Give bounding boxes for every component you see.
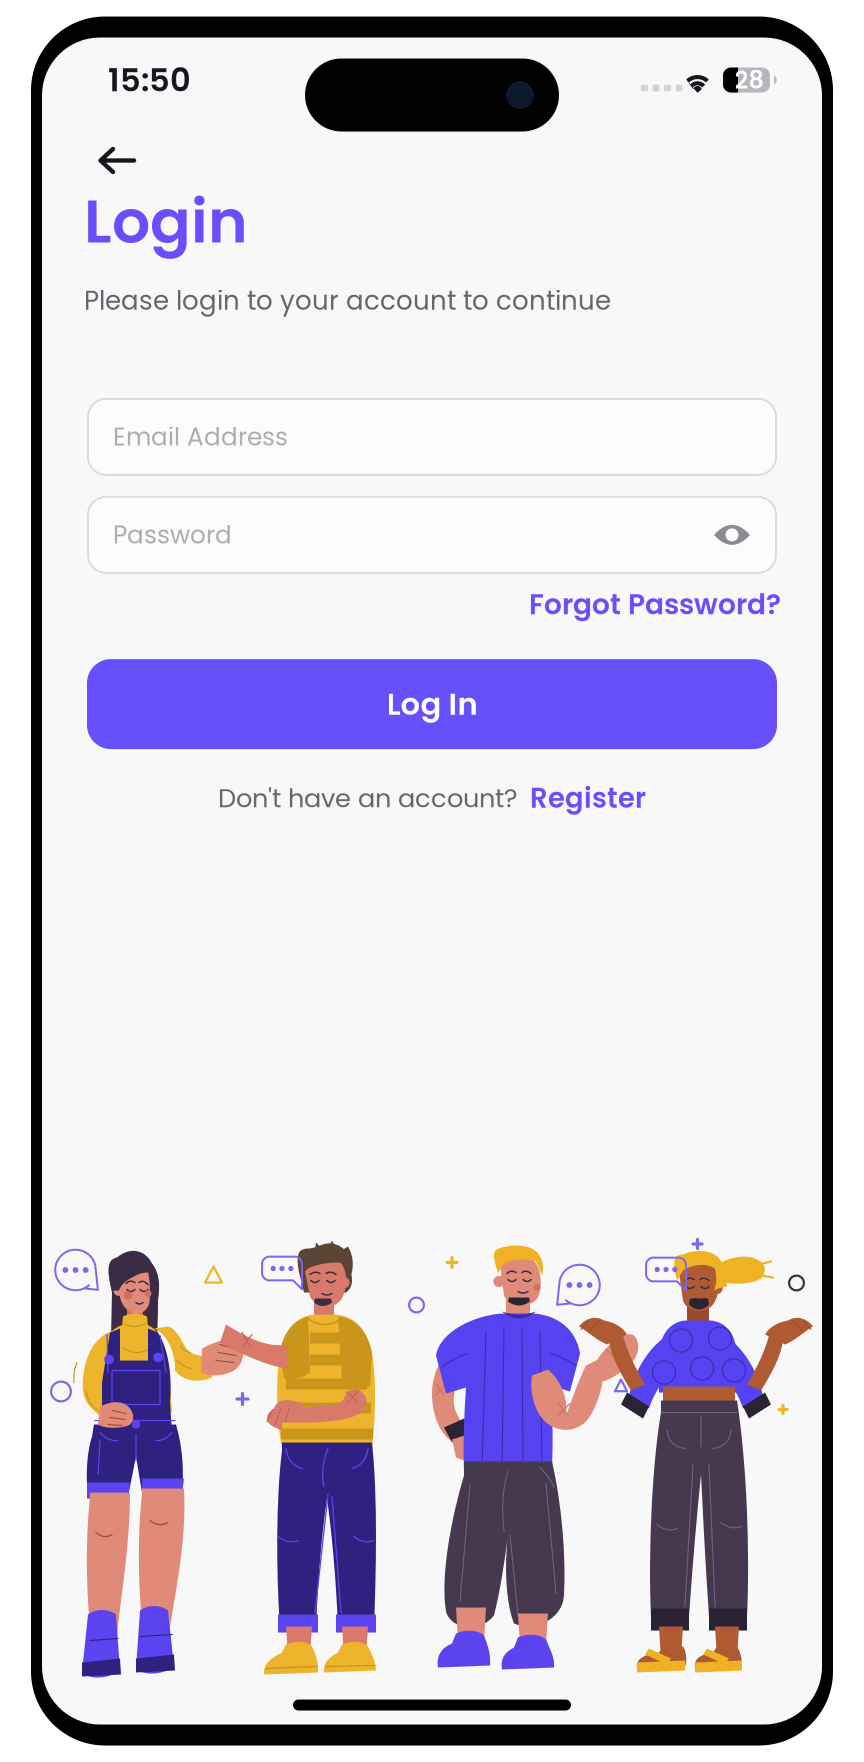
staticText: Email Address bbox=[113, 420, 288, 454]
button[interactable]: Register bbox=[530, 779, 646, 817]
button[interactable]: Email Address bbox=[87, 398, 777, 476]
staticText: Log In bbox=[386, 683, 477, 725]
staticText: 15:50 bbox=[108, 58, 191, 102]
staticText: Don't have an account? bbox=[218, 780, 517, 816]
staticText: Register bbox=[530, 779, 646, 817]
staticText: Password bbox=[113, 518, 232, 552]
staticText: 28 bbox=[734, 63, 763, 97]
button[interactable]: Log In bbox=[87, 659, 777, 749]
staticText: Login bbox=[84, 179, 248, 263]
staticText: Forgot Password? bbox=[529, 585, 781, 624]
staticText: Please login to your account to continue bbox=[84, 282, 611, 319]
button[interactable]: Forgot Password? bbox=[525, 587, 777, 634]
button[interactable]: Password bbox=[87, 496, 777, 574]
button[interactable]: Back bbox=[84, 141, 145, 179]
